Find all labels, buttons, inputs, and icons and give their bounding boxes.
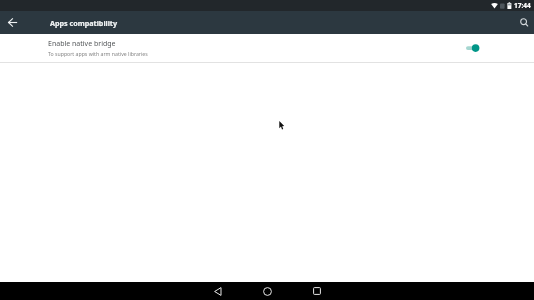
button[interactable] [516,11,534,34]
staticText: 17:44 [514,1,531,10]
button[interactable] [0,11,24,34]
button[interactable] [466,44,480,52]
staticText: To support apps with arm native librarie… [48,50,148,57]
button[interactable] [210,282,226,300]
button[interactable]: Enable native bridge [0,34,534,62]
button[interactable] [259,282,275,300]
staticText: Enable native bridge [48,39,116,49]
button[interactable] [309,282,325,300]
staticText: Apps compatibility [50,18,118,28]
